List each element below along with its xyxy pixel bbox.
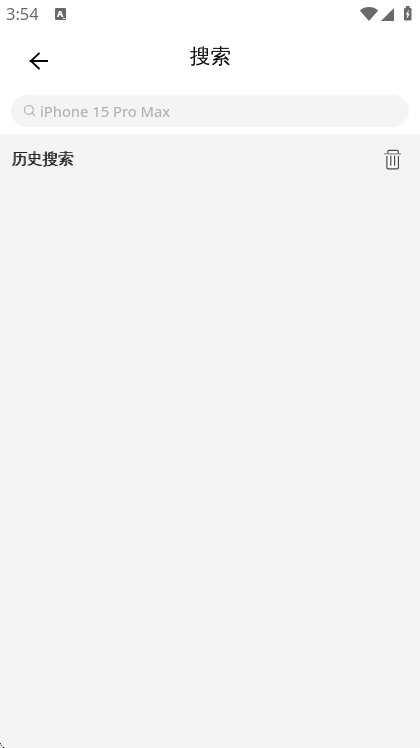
button[interactable]: Clear search history [380,147,405,172]
button[interactable]: Back [26,49,50,73]
staticText: 搜索 [190,43,231,69]
staticText: 历史搜索 [11,149,73,169]
staticText: 3:54 [6,2,39,24]
staticText: 历史搜索 [12,149,74,169]
staticText: 搜索 [190,43,231,69]
staticText: A [57,8,64,19]
staticText: iPhone 15 Pro Max [40,101,171,121]
button[interactable]: iPhone 15 Pro Max [11,95,409,127]
